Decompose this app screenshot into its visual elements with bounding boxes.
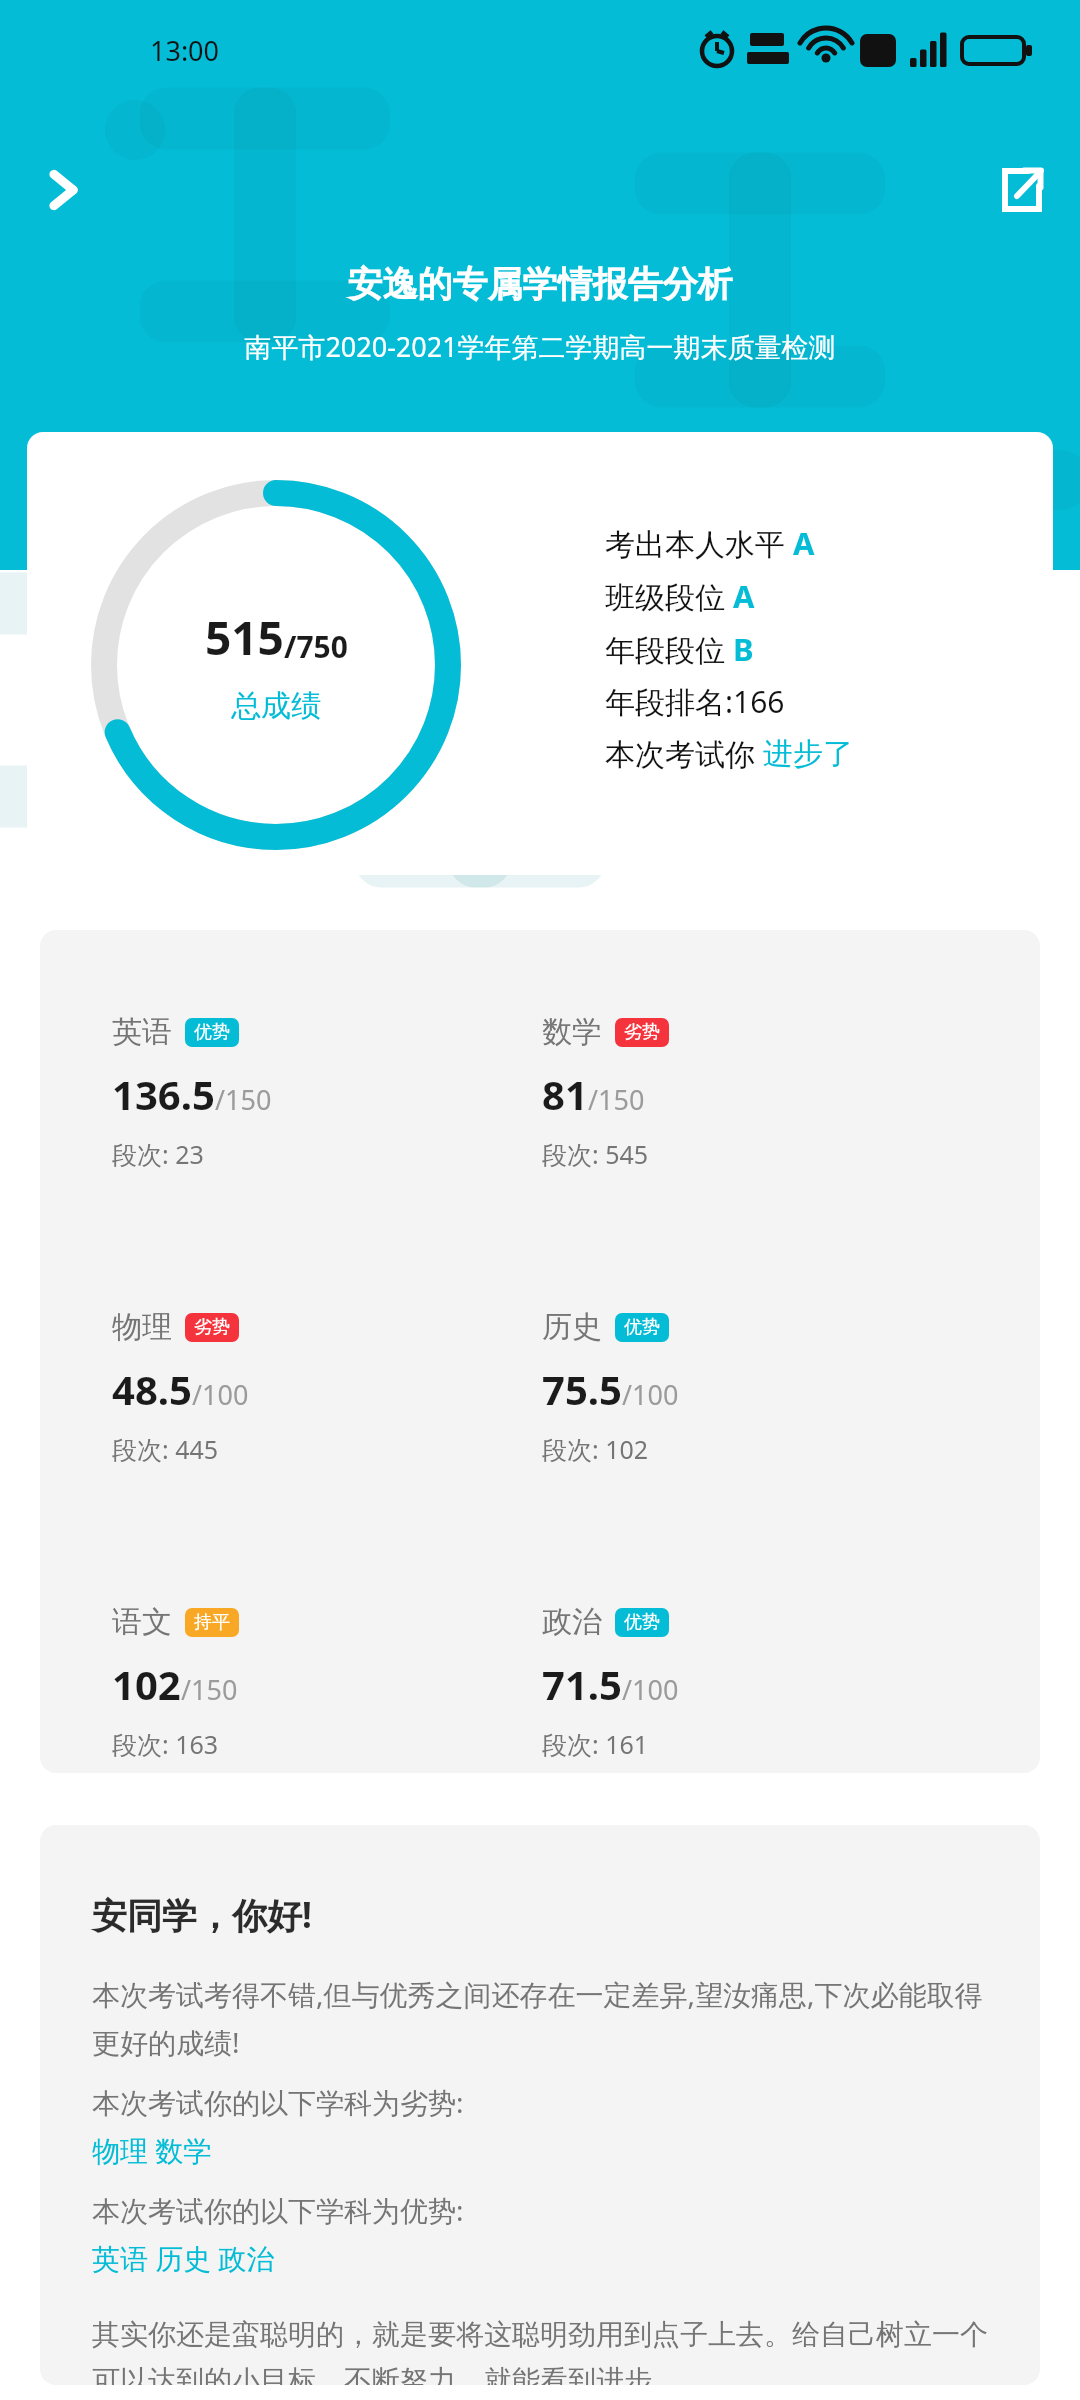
button[interactable]: 515 [27, 432, 1053, 875]
staticText: 政治 [542, 1603, 602, 1641]
staticText: 历史 [542, 1308, 602, 1346]
staticText: 优势 [624, 1611, 660, 1634]
staticText: 数学 [542, 1013, 602, 1051]
staticText: /100 [622, 1376, 679, 1413]
staticText: 其实你还是蛮聪明的，就是要将这聪明劲用到点子上去。给自己树立一个可以达到的小目标… [92, 2317, 1000, 2385]
staticText: 考出本人水平 [605, 523, 793, 564]
staticText: 语文 [112, 1603, 172, 1641]
staticText: 136.5 [112, 1067, 215, 1121]
button[interactable]: 物理 [112, 1308, 542, 1466]
staticText: 本次考试考得不错,但与优秀之间还存在一定差异,望汝痛思,下次必能取得更好的成绩! [92, 1975, 1000, 2061]
staticText: 段次: 23 [112, 1137, 204, 1171]
button[interactable]: Share [978, 148, 1062, 232]
staticText: /100 [192, 1376, 249, 1413]
staticText: 物理 [112, 1308, 172, 1346]
button[interactable]: 数学 [542, 1013, 972, 1171]
staticText: 南平市2020-2021学年第二学期高一期末质量检测 [0, 328, 1080, 365]
staticText: 75.5 [542, 1362, 622, 1416]
staticText: /150 [181, 1671, 238, 1708]
staticText: 段次: 161 [542, 1727, 649, 1761]
staticText: 81 [542, 1067, 588, 1121]
staticText: 安同学，你好! [92, 1891, 312, 1939]
staticText: 本次考试你 [605, 733, 763, 774]
staticText: 段次: 163 [112, 1727, 219, 1761]
staticText: /750 [284, 626, 348, 667]
button[interactable]: Back [22, 148, 106, 232]
staticText: 班级段位 [605, 576, 733, 617]
staticText: 本次考试你的以下学科为劣势: [92, 2083, 464, 2121]
staticText: 持平 [194, 1611, 230, 1634]
staticText: 段次: 102 [542, 1432, 649, 1466]
staticText: 英语 [112, 1013, 172, 1051]
staticText: 段次: 545 [542, 1137, 649, 1171]
staticText: 13:00 [150, 32, 220, 69]
staticText: /150 [588, 1081, 645, 1118]
button[interactable]: 历史 [542, 1308, 972, 1466]
staticText: 段次: 445 [112, 1432, 219, 1466]
staticText: 本次考试你的以下学科为优势: [92, 2191, 464, 2229]
staticText: 劣势 [624, 1021, 660, 1044]
staticText: /150 [215, 1081, 272, 1118]
staticText: 安逸的专属学情报告分析 [0, 262, 1080, 306]
staticText: 总成绩 [231, 687, 321, 725]
staticText: 物理 数学 [92, 2131, 212, 2169]
staticText: 48.5 [112, 1362, 192, 1416]
staticText: 优势 [194, 1021, 230, 1044]
staticText: A [733, 575, 755, 617]
staticText: 优势 [624, 1316, 660, 1339]
staticText: 英语 历史 政治 [92, 2239, 275, 2277]
staticText: 102 [112, 1657, 181, 1711]
staticText: 71.5 [542, 1657, 622, 1711]
staticText: 515 [205, 606, 284, 669]
button[interactable]: 英语 [112, 1013, 542, 1171]
staticText: 进步了 [763, 735, 853, 773]
staticText: /100 [622, 1671, 679, 1708]
staticText: 劣势 [194, 1316, 230, 1339]
staticText: 年段排名:166 [605, 681, 785, 722]
staticText: A [793, 522, 815, 564]
button[interactable]: 语文 [112, 1603, 542, 1761]
button[interactable]: 政治 [542, 1603, 972, 1761]
staticText: B [733, 628, 754, 670]
staticText: 年段段位 [605, 629, 733, 670]
